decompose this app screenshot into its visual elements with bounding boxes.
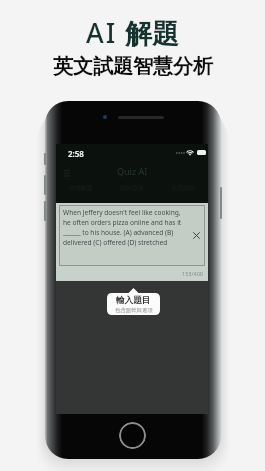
staticText: 英文試題智慧分析 — [53, 54, 213, 79]
staticText: 153/400 — [182, 270, 203, 277]
staticText: 解題 — [125, 17, 179, 51]
staticText: 包含題幹與選項 — [115, 307, 153, 314]
staticText: AI — [86, 14, 118, 51]
button[interactable]: 輸入題目 — [107, 288, 160, 315]
button[interactable]: Home — [119, 422, 146, 449]
staticText: Quiz AI — [117, 165, 148, 177]
staticText: 2:58 — [68, 148, 84, 159]
button[interactable]: Menu — [61, 167, 73, 179]
staticText: 輸入題目 — [116, 295, 151, 306]
staticText: When Jeffery doesn't feel like cooking, … — [63, 208, 189, 247]
button[interactable]: When Jeffery doesn't feel like cooking, … — [59, 205, 205, 266]
button[interactable]: Clear text — [192, 231, 201, 240]
